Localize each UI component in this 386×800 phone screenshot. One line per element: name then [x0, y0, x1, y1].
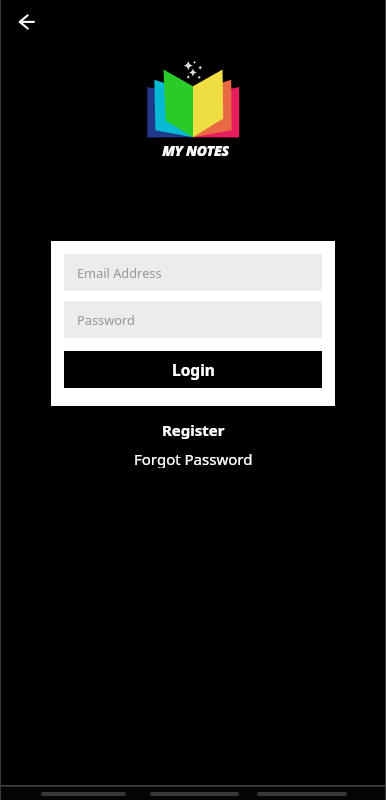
staticText: MY NOTES: [162, 141, 229, 157]
staticText: Login: [172, 359, 215, 380]
button[interactable]: System navigation: [41, 792, 126, 796]
button[interactable]: Back: [15, 9, 41, 35]
button[interactable]: Forgot Password: [128, 449, 259, 468]
button[interactable]: System navigation: [257, 792, 347, 796]
button[interactable]: Email Address: [64, 254, 322, 291]
staticText: Email Address: [77, 264, 162, 281]
staticText: Forgot Password: [134, 449, 253, 468]
button[interactable]: System navigation: [150, 792, 239, 796]
button[interactable]: Register: [156, 420, 231, 439]
button[interactable]: Login: [64, 351, 322, 388]
staticText: Password: [77, 311, 135, 328]
staticText: Register: [162, 420, 225, 439]
button[interactable]: Password: [64, 301, 322, 338]
